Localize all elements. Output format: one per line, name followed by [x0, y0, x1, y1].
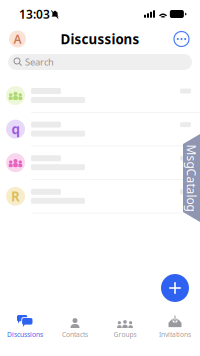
staticText: Invitations	[159, 330, 191, 339]
button[interactable]: R	[0, 180, 200, 213]
button[interactable]: Invitations	[150, 312, 200, 356]
staticText: Discussions	[60, 30, 139, 48]
staticText: Search	[25, 56, 54, 68]
button[interactable]: More	[174, 31, 189, 46]
staticText: Groups	[113, 330, 136, 339]
button[interactable]: Groups	[100, 312, 150, 356]
button[interactable]: Contacts	[50, 312, 100, 356]
staticText: Discussions	[7, 330, 43, 339]
staticText: Contacts	[62, 330, 88, 339]
button[interactable]: q	[0, 113, 200, 146]
button[interactable]	[0, 146, 200, 180]
staticText: 13:03	[19, 6, 50, 22]
button[interactable]: MsgCatalog	[183, 134, 200, 222]
button[interactable]: New message	[161, 274, 189, 302]
button[interactable]: Profile	[9, 30, 26, 47]
staticText: q	[11, 120, 19, 138]
staticText: A	[13, 31, 21, 47]
button[interactable]	[0, 79, 200, 113]
staticText: MsgCatalog	[158, 170, 200, 186]
staticText: R	[11, 187, 20, 205]
button[interactable]: Search	[8, 54, 192, 70]
button[interactable]: Discussions	[0, 312, 50, 356]
